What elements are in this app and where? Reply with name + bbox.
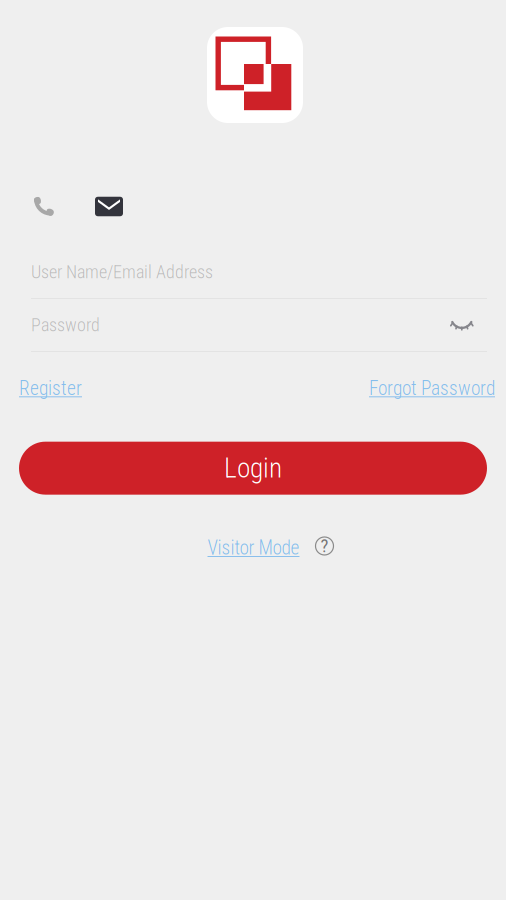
staticText: Register [19, 377, 82, 400]
staticText: Login [224, 452, 282, 484]
button[interactable]: Register [19, 377, 82, 400]
staticText: Visitor Mode [207, 537, 299, 559]
button[interactable]: Sign in with phone number [32, 196, 95, 217]
staticText: Forgot Password [369, 377, 495, 400]
button[interactable]: Forgot Password [369, 377, 495, 400]
button[interactable]: Visitor Mode [207, 537, 299, 559]
button[interactable]: About visitor mode [299, 537, 333, 559]
staticText: ? [320, 535, 328, 557]
staticText: User Name/Email Address [31, 261, 213, 283]
button[interactable]: Show password [450, 319, 487, 330]
staticText: Password [31, 314, 100, 336]
button[interactable]: Login [19, 442, 487, 495]
button[interactable]: Sign in with email [95, 196, 135, 217]
